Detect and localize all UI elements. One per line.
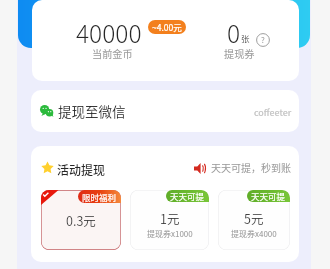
staticText: 提现至微信 — [58, 101, 126, 121]
staticText: 40000 — [76, 15, 142, 50]
staticText: 提现券x4000 — [231, 228, 277, 240]
staticText: 1元 — [160, 209, 180, 227]
staticText: 活动提现 — [57, 161, 106, 178]
staticText: coffeeter — [254, 106, 292, 119]
staticText: 提现券 — [224, 46, 255, 61]
staticText: 天天可提，秒到账 — [211, 160, 291, 174]
staticText: 限时福利 — [82, 191, 117, 203]
staticText: 0.3元 — [66, 211, 96, 229]
button[interactable]: 天天可提 — [218, 190, 290, 250]
button[interactable]: 限时福利 — [41, 190, 121, 250]
staticText: ? — [261, 34, 265, 46]
staticText: 5元 — [244, 209, 264, 227]
staticText: ~4.00元 — [152, 21, 182, 33]
staticText: 当前金币 — [92, 46, 133, 61]
button[interactable]: 天天可提 — [130, 190, 209, 250]
button[interactable]: 提现至微信 — [31, 90, 299, 132]
staticText: 0 — [227, 15, 241, 50]
staticText: 天天可提 — [170, 190, 205, 202]
staticText: 天天可提 — [251, 190, 286, 202]
button[interactable]: 提现券说明 — [256, 33, 270, 47]
staticText: 提现券x1000 — [147, 228, 193, 240]
staticText: 张 — [241, 32, 250, 44]
